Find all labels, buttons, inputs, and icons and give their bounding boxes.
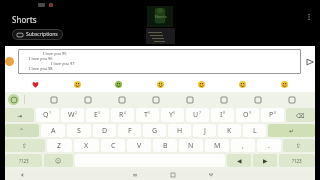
staticText: Shorts — [12, 14, 37, 25]
button[interactable]: Emoji 7 — [279, 79, 290, 90]
button[interactable]: Toolbar action 2 — [82, 94, 93, 105]
button[interactable]: O — [236, 108, 259, 122]
button[interactable]: Y — [161, 108, 184, 122]
button[interactable]: Toolbar action 6 — [218, 94, 229, 105]
button[interactable] — [5, 57, 14, 66]
button[interactable]: I love you 95 — [18, 49, 301, 74]
button[interactable]: Emoji 2 — [72, 79, 83, 90]
button[interactable]: V — [127, 139, 151, 152]
staticText: Y — [169, 110, 173, 120]
button[interactable]: R — [111, 108, 134, 122]
staticText: ?123 — [292, 158, 302, 164]
button[interactable]: P — [261, 108, 284, 122]
staticText: ▶ — [263, 157, 268, 164]
button[interactable]: ⇧ — [283, 139, 315, 152]
button[interactable]: M — [205, 139, 229, 152]
staticText: ⌫ — [296, 112, 305, 119]
staticText: I love you 96 — [29, 56, 53, 61]
staticText: P — [269, 110, 274, 120]
staticText: O — [243, 110, 249, 120]
staticText: Shorts — [154, 14, 167, 19]
staticText: I love you 97 — [51, 61, 75, 66]
staticText: G — [152, 126, 158, 136]
button[interactable]: . — [257, 139, 281, 152]
button[interactable]: U — [186, 108, 209, 122]
staticText: ↵ — [289, 127, 295, 134]
button[interactable]: Emoji 6 — [237, 79, 248, 90]
button[interactable]: ?123 — [5, 154, 42, 167]
button[interactable]: Q — [36, 108, 59, 122]
button[interactable]: H — [168, 124, 191, 137]
button[interactable]: Toolbar action 8 — [286, 94, 297, 105]
button[interactable]: Z — [47, 139, 72, 152]
button[interactable]: Toolbar action 1 — [48, 94, 59, 105]
staticText: E — [94, 110, 98, 120]
button[interactable]: Emoji 5 — [196, 79, 207, 90]
button[interactable]: ⇧ — [5, 139, 45, 152]
staticText: C — [111, 141, 116, 151]
staticText: R — [119, 110, 124, 120]
staticText: I love you 95 — [43, 51, 67, 56]
button[interactable]: ☺ — [44, 154, 73, 167]
button[interactable]: L — [243, 124, 266, 137]
button[interactable]: Keyboard assistant — [8, 94, 19, 105]
button[interactable]: I — [211, 108, 234, 122]
button[interactable]: E — [86, 108, 109, 122]
button[interactable]: Toolbar action 4 — [150, 94, 161, 105]
button[interactable]: T — [136, 108, 159, 122]
button[interactable]: ⌫ — [286, 108, 315, 122]
staticText: ⌃ — [19, 127, 25, 134]
staticText: 0 — [274, 110, 277, 115]
button[interactable]: C — [101, 139, 125, 152]
staticText: V — [137, 141, 142, 151]
button[interactable]: ↵ — [268, 124, 315, 137]
button[interactable]: A — [41, 124, 65, 137]
button[interactable]: ▶ — [253, 154, 277, 167]
button[interactable]: N — [179, 139, 203, 152]
button[interactable]: K — [218, 124, 241, 137]
button[interactable]: D — [93, 124, 116, 137]
button[interactable]: G — [143, 124, 166, 137]
button[interactable]: Send — [305, 57, 315, 67]
staticText: , — [242, 141, 244, 151]
button[interactable]: Toolbar action 5 — [184, 94, 195, 105]
staticText: I — [220, 110, 223, 120]
staticText: B — [163, 141, 168, 151]
staticText: H — [177, 126, 183, 136]
staticText: W — [68, 110, 75, 120]
button[interactable]: Toolbar action 7 — [252, 94, 263, 105]
button[interactable]: F — [118, 124, 141, 137]
button[interactable]: Recents — [207, 171, 215, 179]
button[interactable]: ⇥ — [5, 108, 34, 122]
button[interactable]: Emoji 3 — [113, 79, 124, 90]
staticText: A — [51, 126, 56, 136]
button[interactable]: ⌃ — [5, 124, 39, 137]
button[interactable]: ?123 — [279, 154, 315, 167]
button[interactable]: J — [193, 124, 216, 137]
staticText: 7 — [199, 110, 202, 115]
staticText: 5 — [148, 110, 151, 115]
staticText: Z — [57, 141, 62, 151]
button[interactable]: Emoji 1 — [30, 79, 41, 90]
button[interactable]: Subscriptions — [12, 29, 63, 40]
staticText: 6 — [173, 110, 176, 115]
button[interactable]: More options — [304, 12, 314, 22]
staticText: ◀ — [237, 157, 242, 164]
button[interactable]: Toolbar action 3 — [116, 94, 127, 105]
button[interactable]: X — [74, 139, 99, 152]
button[interactable]: W — [61, 108, 84, 122]
staticText: S — [77, 126, 81, 136]
button[interactable]: Home — [169, 171, 177, 179]
staticText: ?123 — [19, 158, 29, 164]
button[interactable]: Emoji 4 — [155, 79, 166, 90]
staticText: . — [268, 141, 270, 151]
button[interactable]: Back — [18, 171, 26, 179]
button[interactable]: Keyboard — [131, 171, 139, 179]
button[interactable]: ◀ — [227, 154, 251, 167]
button[interactable]: , — [231, 139, 255, 152]
staticText: M — [214, 141, 221, 151]
button[interactable]: B — [153, 139, 177, 152]
button[interactable]: S — [67, 124, 91, 137]
staticText: T — [144, 110, 148, 120]
